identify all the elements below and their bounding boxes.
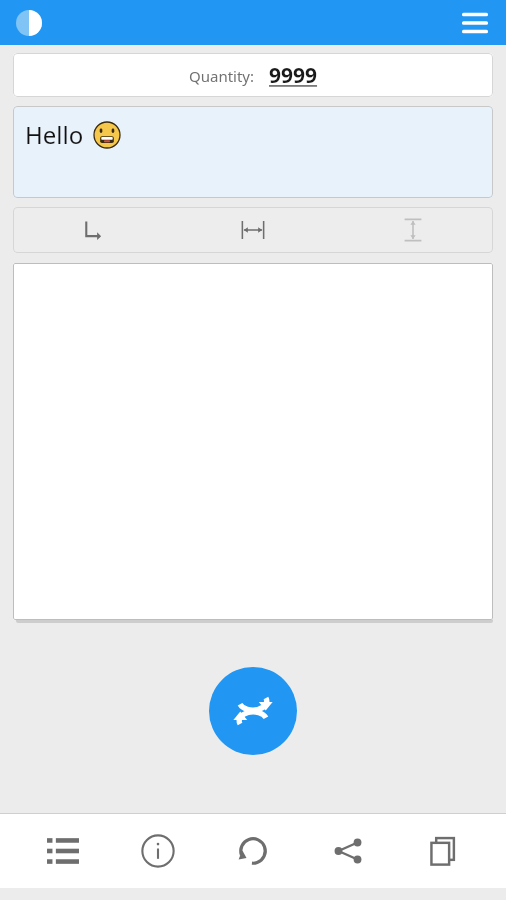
button[interactable]: Width: [173, 208, 333, 252]
button[interactable]: Share: [316, 819, 380, 883]
button[interactable]: Toggle theme: [11, 5, 47, 41]
button[interactable]: Menu: [454, 2, 496, 44]
button[interactable]: Line break: [13, 208, 173, 252]
button[interactable]: List: [31, 819, 95, 883]
button[interactable]: Quantity:: [13, 53, 493, 97]
button[interactable]: Info: [126, 819, 190, 883]
staticText: 9999: [269, 61, 318, 90]
button[interactable]: Rotate: [221, 819, 285, 883]
button[interactable]: Hello: [13, 106, 493, 198]
button[interactable]: Drawing canvas: [13, 263, 493, 620]
button[interactable]: Copy: [411, 819, 475, 883]
button[interactable]: Height: [333, 208, 493, 252]
staticText: Quantity:: [189, 66, 255, 86]
button[interactable]: Refresh: [209, 667, 297, 755]
staticText: Hello: [25, 118, 84, 151]
